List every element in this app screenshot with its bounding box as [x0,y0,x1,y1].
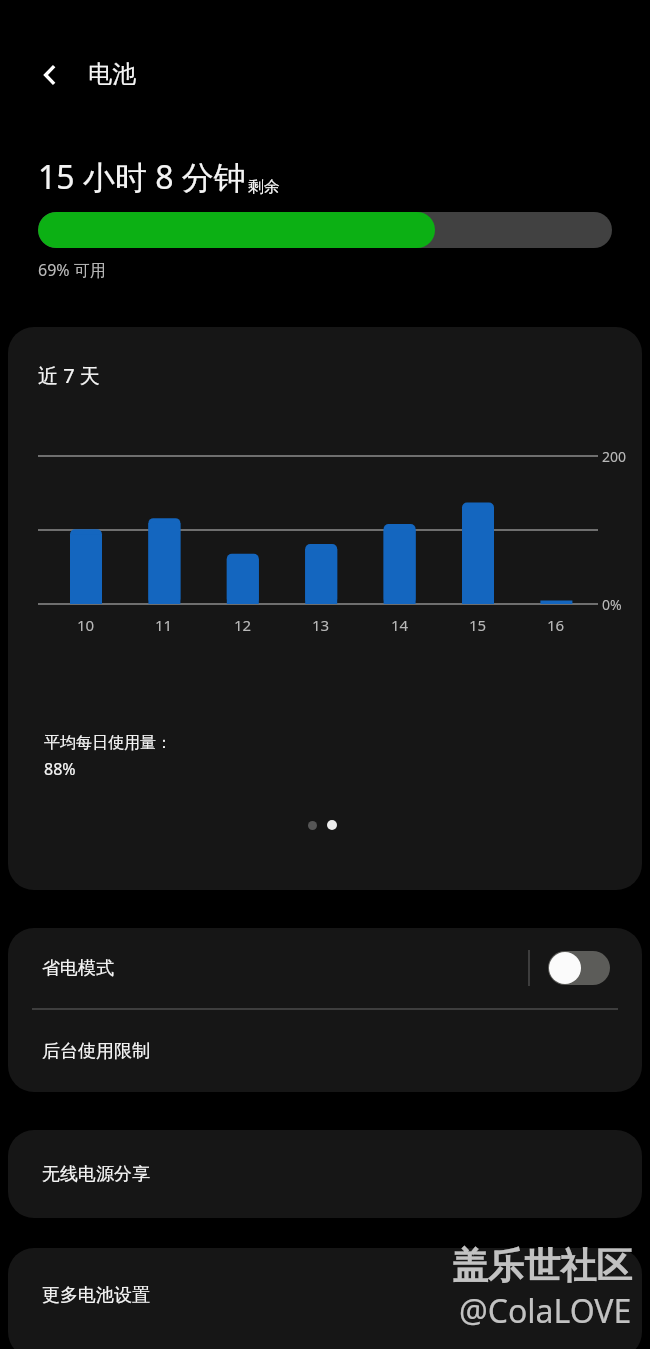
button[interactable]: Back [26,51,74,99]
button[interactable]: 近 7 天 [8,327,642,890]
staticText: 后台使用限制 [42,1040,150,1063]
staticText: 无线电源分享 [42,1163,150,1186]
button[interactable]: 更多电池设置 [8,1248,642,1349]
staticText: 10 [77,615,95,635]
staticText: 平均每日使用量： [44,733,172,753]
staticText: 0% [602,595,622,614]
button[interactable]: 省电模式 [8,928,642,1008]
staticText: 更多电池设置 [42,1284,150,1307]
staticText: 16 [547,615,565,635]
staticText: 电池 [88,59,136,89]
staticText: 15 小时 8 分钟 [38,155,246,199]
button[interactable]: 无线电源分享 [8,1130,642,1218]
staticText: 13 [312,615,330,635]
staticText: 200 [602,447,627,466]
staticText: 12 [234,615,252,635]
button[interactable]: Power saving mode toggle, off [548,951,610,985]
staticText: 省电模式 [42,957,114,980]
staticText: 近 7 天 [38,362,100,389]
staticText: 剩余 [248,177,280,197]
staticText: @ColaLOVE [459,1289,632,1333]
staticText: 盖乐世社区 [452,1243,632,1288]
staticText: 15 [469,615,487,635]
staticText: 14 [391,615,409,635]
staticText: 88% [44,758,76,780]
staticText: 69% 可用 [38,259,106,281]
button[interactable]: 后台使用限制 [8,1010,642,1092]
staticText: 11 [155,615,173,635]
